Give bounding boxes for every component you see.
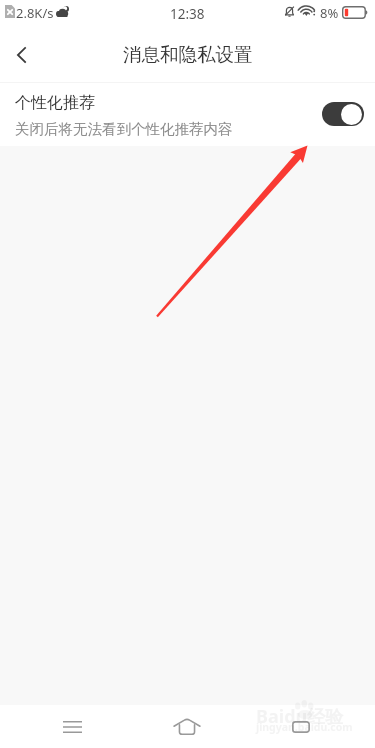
button[interactable]: Menu: [48, 705, 96, 748]
staticText: jingyan.baidu.com: [256, 720, 353, 734]
button[interactable]: Back: [0, 28, 44, 81]
staticText: 消息和隐私设置: [123, 43, 253, 66]
staticText: 个性化推荐: [15, 93, 95, 113]
button[interactable]: Home: [162, 705, 211, 748]
staticText: 12:38: [170, 5, 205, 23]
staticText: 8%: [320, 4, 339, 22]
button[interactable]: Personalized recommendation toggle: [322, 102, 364, 126]
button[interactable]: Recents: [276, 705, 325, 748]
staticText: 2.8K/s: [16, 4, 54, 22]
staticText: 关闭后将无法看到个性化推荐内容: [15, 120, 233, 138]
staticText: Baidu经验: [256, 704, 344, 729]
button[interactable]: 个性化推荐: [0, 81, 375, 146]
